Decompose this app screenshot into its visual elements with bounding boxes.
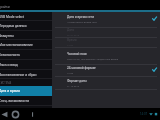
staticText: Настройки — [0, 5, 10, 9]
staticText: 14:07 — [67, 43, 74, 46]
button[interactable]: Мое местоположение — [0, 40, 52, 50]
staticText: Спец. возможности — [0, 99, 30, 103]
staticText: Дата и время — [0, 89, 20, 93]
staticText: Дата и время сети — [67, 15, 95, 19]
button[interactable]: USB Mode select — [0, 12, 52, 21]
button[interactable]: Recent apps — [28, 110, 37, 119]
button[interactable]: Спец. возможности — [0, 96, 52, 106]
staticText: Дата — [67, 28, 74, 32]
staticText: USB Mode select — [0, 15, 25, 19]
button[interactable]: Формат даты — [52, 77, 160, 90]
staticText: Время — [67, 38, 77, 42]
button[interactable]: Back — [0, 110, 9, 119]
staticText: Язык и ввод — [0, 63, 18, 67]
button[interactable]: Home — [11, 110, 20, 119]
button[interactable]: Часовой пояс — [52, 48, 160, 65]
staticText: Восстановление и сброс — [0, 73, 37, 77]
staticText: СИСТЕМА — [0, 81, 12, 85]
staticText: Мое местоположение — [0, 43, 33, 47]
staticText: 30.01.2015 — [67, 33, 80, 36]
button[interactable]: Передача данных — [0, 21, 52, 31]
staticText: Часовой пояс — [67, 52, 88, 56]
staticText: Передача данных — [0, 24, 27, 28]
staticText: 31.12.2013 — [67, 84, 80, 87]
staticText: GMT+04:00, Московское стандартное время — [67, 57, 119, 60]
button[interactable]: Дата — [52, 28, 160, 38]
button[interactable]: Восстановление и сброс — [0, 70, 52, 79]
staticText: Безопасность — [0, 53, 21, 57]
button[interactable]: Язык и ввод — [0, 60, 52, 70]
button[interactable]: Безопасность — [0, 50, 52, 60]
button[interactable]: Аккаунты — [0, 31, 52, 40]
staticText: 14:07 — [140, 112, 148, 116]
staticText: Использовать время сети — [67, 20, 97, 23]
staticText: 24-часовой формат — [67, 66, 96, 70]
button[interactable]: Время — [52, 38, 160, 48]
button[interactable]: 24-часовой формат — [52, 65, 160, 77]
button[interactable]: Дата и время — [0, 86, 52, 96]
staticText: Аккаунты — [0, 34, 14, 38]
button[interactable]: Дата и время сети — [52, 12, 160, 28]
staticText: 13:00 — [67, 71, 74, 74]
staticText: Формат даты — [67, 79, 87, 83]
